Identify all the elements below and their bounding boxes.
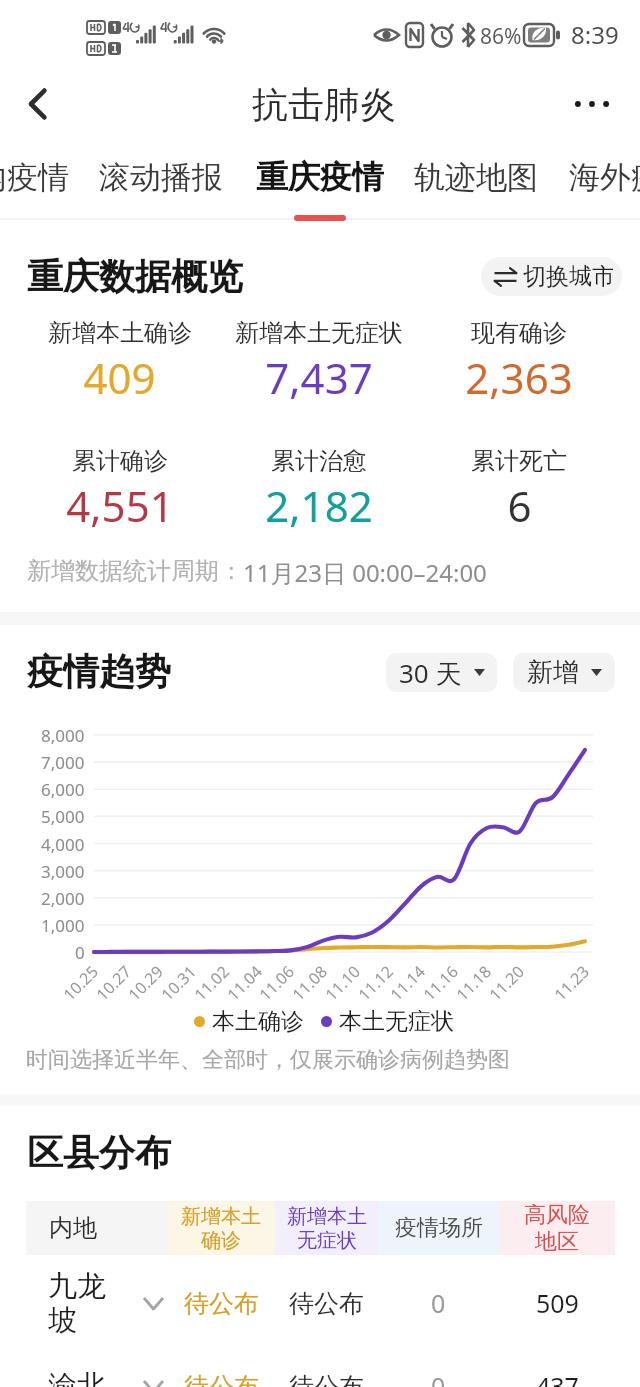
staticText: 409 xyxy=(83,349,156,406)
button[interactable]: 累计治愈 xyxy=(219,446,419,534)
staticText: 11.23 xyxy=(549,961,594,1005)
staticText: 海外疫情 xyxy=(569,158,640,197)
staticText: 11.12 xyxy=(353,961,398,1005)
button[interactable]: 九龙 坡 xyxy=(26,1257,615,1349)
button[interactable]: 轨迹地图 xyxy=(414,146,538,208)
staticText: 切换城市 xyxy=(523,262,613,291)
staticText: 重庆数据概览 xyxy=(27,254,243,299)
staticText: 抗击肺炎 xyxy=(252,82,396,127)
staticText: 渝北 xyxy=(48,1368,106,1387)
staticText: 待公布 xyxy=(184,1288,259,1319)
staticText: 高风险 地区 xyxy=(524,1201,590,1255)
staticText: 轨迹地图 xyxy=(414,158,538,197)
staticText: 30 天 xyxy=(399,655,462,691)
staticText: 累计死亡 xyxy=(471,446,567,476)
staticText: 6,000 xyxy=(41,778,85,801)
staticText: 10.29 xyxy=(123,961,168,1005)
staticText: 0 xyxy=(431,1369,446,1387)
staticText: 新增本土 确诊 xyxy=(181,1204,261,1253)
staticText: 待公布 xyxy=(184,1371,259,1387)
staticText: 11.02 xyxy=(189,961,234,1005)
staticText: 4,000 xyxy=(41,833,85,856)
button[interactable]: 累计确诊 xyxy=(20,446,219,534)
button[interactable]: 海外疫情 xyxy=(569,146,640,208)
staticText: 509 xyxy=(536,1286,579,1320)
button[interactable]: 新增本土无症状 xyxy=(219,318,419,406)
staticText: 2,182 xyxy=(265,477,373,534)
staticText: 累计确诊 xyxy=(72,446,168,476)
button[interactable]: 重庆疫情 xyxy=(256,146,384,208)
staticText: 疫情趋势 xyxy=(27,649,171,694)
staticText: 国内疫情 xyxy=(0,158,69,197)
staticText: 8,000 xyxy=(41,724,85,747)
staticText: 5,000 xyxy=(41,805,85,828)
staticText: 86% xyxy=(480,22,522,51)
staticText: 10.31 xyxy=(156,961,201,1005)
staticText: 11.04 xyxy=(222,961,267,1005)
staticText: 7,000 xyxy=(41,751,85,774)
button[interactable]: 新增本土确诊 xyxy=(20,318,219,406)
staticText: 2,363 xyxy=(465,349,573,406)
staticText: 8:39 xyxy=(571,18,619,51)
staticText: 11月23日 00:00–24:00 xyxy=(243,556,487,589)
staticText: 11.14 xyxy=(385,961,430,1005)
button[interactable]: 现有确诊 xyxy=(419,318,619,406)
staticText: 11.10 xyxy=(320,961,365,1005)
staticText: 2,000 xyxy=(41,887,85,910)
button[interactable]: Back xyxy=(10,76,66,132)
staticText: 11.20 xyxy=(484,961,529,1005)
button[interactable]: 30 天 xyxy=(386,653,497,692)
staticText: 重庆疫情 xyxy=(256,157,384,197)
staticText: 6 xyxy=(507,477,532,534)
button[interactable]: 新增 xyxy=(513,653,615,692)
staticText: 11.18 xyxy=(451,961,496,1005)
button[interactable]: 滚动播报 xyxy=(99,146,223,208)
staticText: 新增本土确诊 xyxy=(48,318,192,348)
staticText: 新增本土 无症状 xyxy=(287,1204,367,1253)
staticText: 九龙 坡 xyxy=(48,1268,106,1339)
staticText: 11.06 xyxy=(254,961,299,1005)
staticText: 新增 xyxy=(527,656,579,689)
button[interactable]: 渝北 xyxy=(26,1340,615,1387)
staticText: 疫情场所 xyxy=(395,1214,483,1242)
button[interactable]: 切换城市 xyxy=(481,257,622,296)
staticText: 本土确诊 xyxy=(212,1007,304,1036)
staticText: 10.27 xyxy=(91,961,136,1005)
staticText: 时间选择近半年、全部时，仅展示确诊病例趋势图 xyxy=(26,1046,510,1074)
staticText: 本土无症状 xyxy=(339,1007,454,1036)
staticText: 内地 xyxy=(49,1213,97,1243)
staticText: 437 xyxy=(536,1369,579,1387)
staticText: 7,437 xyxy=(265,349,373,406)
staticText: 现有确诊 xyxy=(471,318,567,348)
staticText: 0 xyxy=(431,1286,446,1320)
staticText: 3,000 xyxy=(41,860,85,883)
button[interactable]: More options xyxy=(564,76,620,132)
staticText: 累计治愈 xyxy=(271,446,367,476)
staticText: 新增数据统计周期： xyxy=(27,556,243,586)
staticText: 11.16 xyxy=(418,961,463,1005)
staticText: 10.25 xyxy=(58,961,103,1005)
staticText: 待公布 xyxy=(289,1288,364,1319)
staticText: 区县分布 xyxy=(27,1130,171,1175)
staticText: 0 xyxy=(75,941,85,964)
staticText: 滚动播报 xyxy=(99,158,223,197)
button[interactable]: 国内疫情 xyxy=(0,146,69,208)
staticText: 待公布 xyxy=(289,1371,364,1387)
staticText: 1,000 xyxy=(41,914,85,937)
staticText: 新增本土无症状 xyxy=(235,318,403,348)
staticText: 4,551 xyxy=(66,477,174,534)
button[interactable]: 累计死亡 xyxy=(419,446,619,534)
staticText: 11.08 xyxy=(287,961,332,1005)
